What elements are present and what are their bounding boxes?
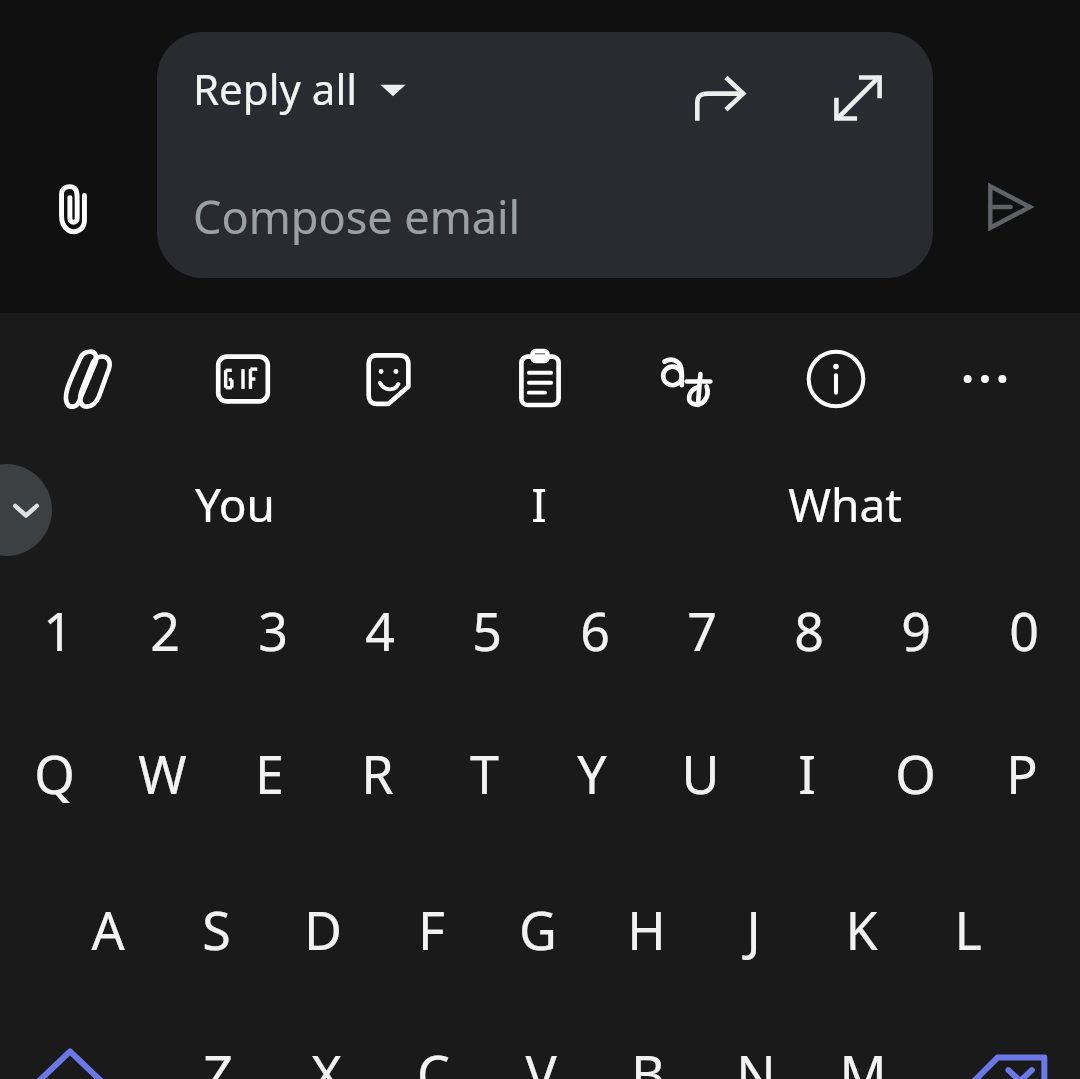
- button[interactable]: Forward: [684, 63, 756, 135]
- button[interactable]: V: [489, 1016, 593, 1079]
- button[interactable]: H: [594, 872, 698, 986]
- staticText: R: [361, 738, 394, 809]
- button[interactable]: B: [596, 1016, 700, 1079]
- button[interactable]: U: [648, 716, 752, 830]
- staticText: Q: [34, 738, 75, 809]
- staticText: B: [631, 1038, 665, 1079]
- staticText: V: [525, 1038, 557, 1079]
- staticText: E: [255, 738, 284, 809]
- staticText: I: [531, 473, 547, 536]
- button[interactable]: I: [755, 716, 859, 830]
- button[interactable]: D: [271, 872, 375, 986]
- button[interactable]: What: [700, 458, 990, 550]
- button[interactable]: S: [164, 872, 268, 986]
- staticText: 7: [687, 595, 717, 666]
- staticText: Z: [203, 1038, 233, 1079]
- staticText: T: [470, 738, 499, 809]
- staticText: 5: [472, 595, 502, 666]
- button[interactable]: Info: [792, 335, 880, 423]
- button[interactable]: Expand: [822, 62, 894, 134]
- staticText: A: [91, 894, 125, 965]
- button[interactable]: L: [916, 872, 1020, 986]
- staticText: Compose email: [193, 186, 521, 247]
- staticText: W: [138, 738, 187, 809]
- button[interactable]: O: [863, 716, 967, 830]
- button[interactable]: 7: [650, 573, 754, 687]
- button[interactable]: K: [809, 872, 913, 986]
- button[interactable]: 8: [757, 573, 861, 687]
- button[interactable]: Backspace: [958, 1029, 1062, 1079]
- staticText: Y: [577, 738, 607, 809]
- staticText: L: [954, 894, 982, 965]
- button[interactable]: J: [701, 872, 805, 986]
- staticText: What: [788, 473, 902, 536]
- button[interactable]: Send: [968, 167, 1048, 247]
- staticText: X: [311, 1038, 342, 1079]
- button[interactable]: Shift: [18, 1029, 122, 1079]
- button[interactable]: Q: [2, 716, 106, 830]
- button[interactable]: Translate: [644, 335, 732, 423]
- button[interactable]: T: [432, 716, 536, 830]
- button[interactable]: 3: [221, 573, 325, 687]
- button[interactable]: F: [379, 872, 483, 986]
- staticText: Reply all: [193, 60, 358, 117]
- button[interactable]: Expand suggestions: [0, 464, 52, 556]
- staticText: 8: [794, 595, 824, 666]
- staticText: S: [202, 894, 231, 965]
- button[interactable]: Emoji sticker: [347, 335, 435, 423]
- staticText: 9: [901, 595, 931, 666]
- button[interactable]: G: [486, 872, 590, 986]
- button[interactable]: Stickers: [50, 335, 138, 423]
- staticText: J: [746, 894, 761, 965]
- staticText: U: [681, 738, 720, 809]
- button[interactable]: 9: [864, 573, 968, 687]
- button[interactable]: 4: [328, 573, 432, 687]
- button[interactable]: Z: [166, 1016, 270, 1079]
- button[interactable]: 0: [972, 573, 1076, 687]
- staticText: 1: [43, 595, 73, 666]
- button[interactable]: You: [90, 458, 380, 550]
- staticText: O: [895, 738, 936, 809]
- staticText: H: [627, 894, 666, 965]
- button[interactable]: 2: [113, 573, 217, 687]
- button[interactable]: N: [704, 1016, 808, 1079]
- staticText: 2: [150, 595, 180, 666]
- staticText: You: [195, 473, 275, 536]
- button[interactable]: 5: [435, 573, 539, 687]
- button[interactable]: A: [56, 872, 160, 986]
- button[interactable]: R: [325, 716, 429, 830]
- button[interactable]: GIF: [199, 335, 287, 423]
- staticText: 4: [365, 595, 395, 666]
- staticText: N: [736, 1038, 776, 1079]
- button[interactable]: 6: [543, 573, 647, 687]
- button[interactable]: X: [274, 1016, 378, 1079]
- staticText: 3: [258, 595, 288, 666]
- button[interactable]: Compose email: [157, 172, 933, 278]
- staticText: M: [839, 1038, 887, 1079]
- staticText: G: [519, 894, 557, 965]
- button[interactable]: Attach file: [33, 168, 113, 248]
- button[interactable]: Y: [540, 716, 644, 830]
- button[interactable]: 1: [6, 573, 110, 687]
- button[interactable]: M: [811, 1016, 915, 1079]
- button[interactable]: E: [217, 716, 321, 830]
- staticText: F: [418, 894, 445, 965]
- button[interactable]: P: [970, 716, 1074, 830]
- staticText: C: [417, 1038, 450, 1079]
- button[interactable]: Clipboard: [496, 335, 584, 423]
- button[interactable]: Reply all: [193, 60, 408, 117]
- button[interactable]: C: [381, 1016, 485, 1079]
- button[interactable]: W: [110, 716, 214, 830]
- button[interactable]: More options: [941, 335, 1029, 423]
- staticText: K: [845, 894, 878, 965]
- staticText: P: [1006, 738, 1038, 809]
- staticText: 0: [1009, 595, 1039, 666]
- staticText: 6: [580, 595, 610, 666]
- staticText: I: [798, 738, 816, 809]
- staticText: D: [304, 894, 342, 965]
- button[interactable]: I: [394, 458, 684, 550]
